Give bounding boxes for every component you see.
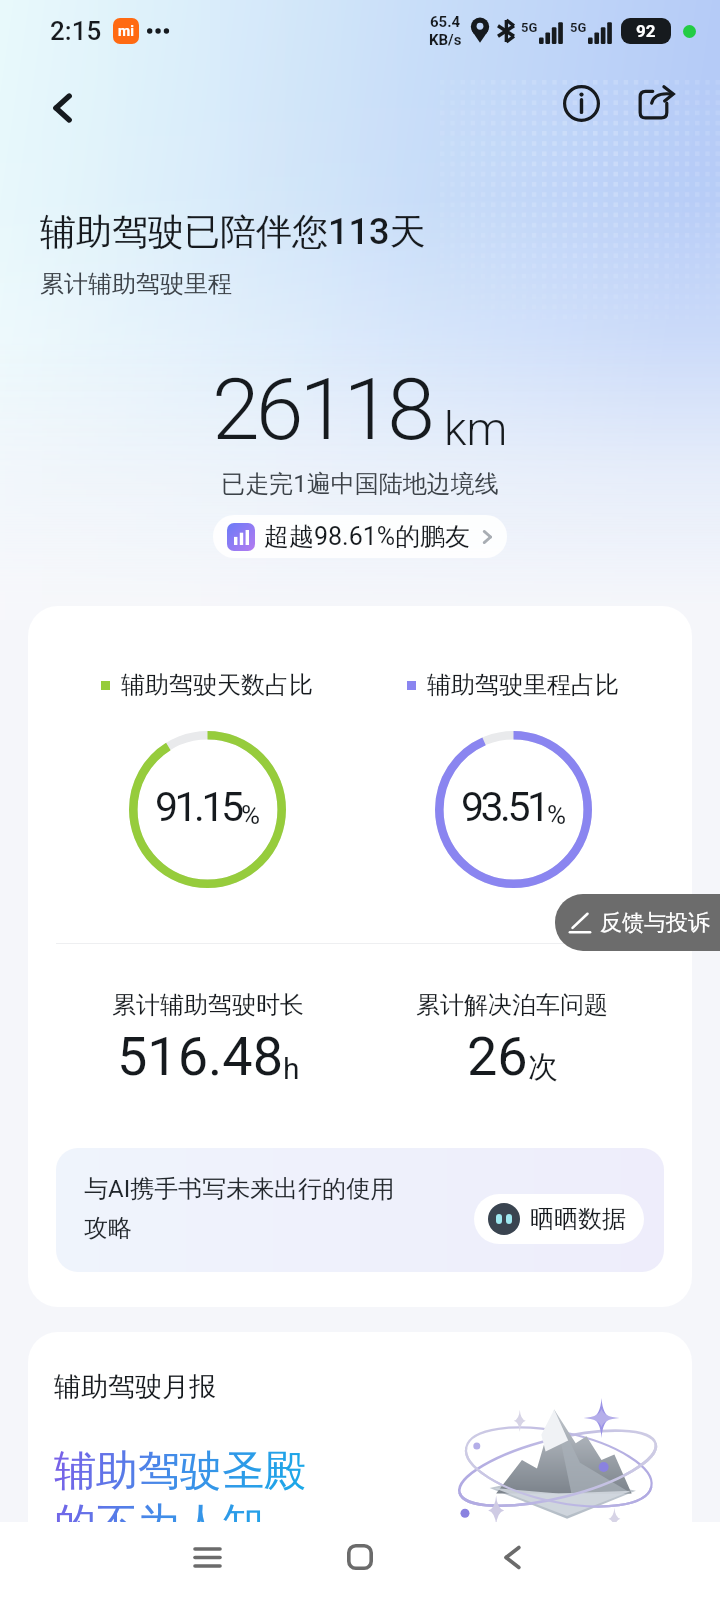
staticText: 超越98.61%的鹏友 xyxy=(264,521,471,552)
staticText: 5G xyxy=(521,20,538,35)
button[interactable]: Share xyxy=(624,70,688,134)
staticText: 累计辅助驾驶时长 xyxy=(112,990,304,1020)
staticText: mi xyxy=(118,23,134,39)
button[interactable]: Info xyxy=(549,71,613,135)
staticText: 26 xyxy=(467,1025,528,1088)
button[interactable]: 反馈与投诉 xyxy=(555,894,720,951)
staticText: h xyxy=(283,1051,300,1086)
staticText: 26118 xyxy=(212,359,432,460)
button[interactable]: 超越98.61%的鹏友 xyxy=(213,515,507,558)
staticText: 辅助驾驶已陪伴您113天 xyxy=(40,209,426,254)
staticText: % xyxy=(241,800,261,830)
staticText: 2:15 xyxy=(50,16,102,46)
staticText: 反馈与投诉 xyxy=(600,909,710,937)
staticText: 次 xyxy=(528,1048,558,1086)
staticText: 93.51 xyxy=(461,783,547,831)
staticText: 辅助驾驶月报 xyxy=(54,1370,216,1404)
staticText: % xyxy=(547,800,567,830)
staticText: 已走完1遍中国陆地边境线 xyxy=(0,469,720,499)
button[interactable]: Back xyxy=(30,76,94,140)
staticText: 65.4 xyxy=(430,13,461,31)
staticText: 累计解决泊车问题 xyxy=(416,990,608,1020)
staticText: 辅助驾驶天数占比 xyxy=(121,670,313,700)
staticText: 与AI携手书写未来出行的使用 攻略 xyxy=(84,1174,395,1243)
staticText: 晒晒数据 xyxy=(530,1204,626,1234)
button[interactable]: Back xyxy=(481,1526,543,1588)
staticText: 辅助驾驶圣殿 的不为人知 xyxy=(54,1445,306,1550)
button[interactable]: Recents xyxy=(176,1526,238,1588)
staticText: km xyxy=(444,402,508,456)
button[interactable]: 晒晒数据 xyxy=(474,1194,644,1244)
staticText: 91.15 xyxy=(155,783,241,831)
staticText: 92 xyxy=(636,21,656,41)
staticText: 516.48 xyxy=(117,1025,283,1088)
staticText: 辅助驾驶里程占比 xyxy=(427,670,619,700)
staticText: 5G xyxy=(570,20,587,35)
staticText: 累计辅助驾驶里程 xyxy=(40,269,232,299)
button[interactable]: Home xyxy=(329,1526,391,1588)
staticText: KB/s xyxy=(429,31,462,49)
